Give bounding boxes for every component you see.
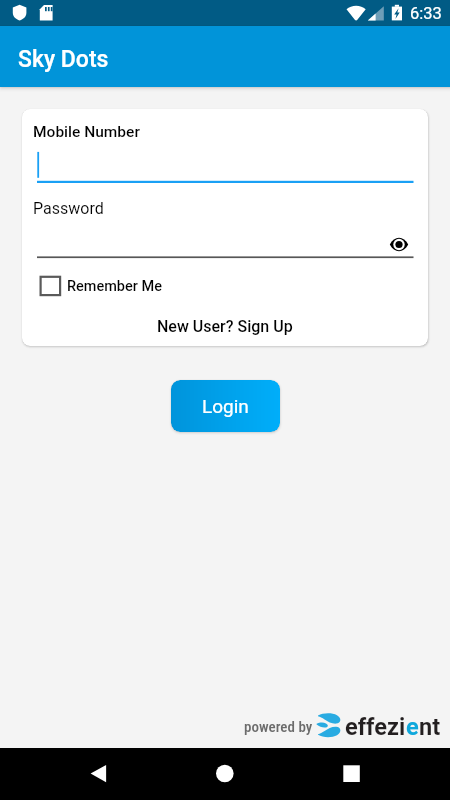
staticText: Remember Me: [67, 278, 162, 295]
button[interactable]: Login: [171, 380, 280, 432]
staticText: Login: [202, 395, 249, 417]
staticText: powered by: [244, 718, 313, 736]
button[interactable]: New User? Sign Up: [157, 317, 293, 336]
staticText: Sky Dots: [18, 46, 109, 73]
staticText: nt: [419, 713, 441, 741]
staticText: Password: [33, 199, 104, 218]
button[interactable]: Home: [202, 751, 247, 796]
button[interactable]: Back: [76, 751, 121, 796]
staticText: effezi: [345, 713, 406, 741]
staticText: 6:33: [410, 4, 442, 23]
staticText: Mobile Number: [33, 123, 140, 141]
button[interactable]: Recent apps: [329, 751, 374, 796]
button[interactable]: Show password: [387, 232, 411, 256]
button[interactable]: Remember Me: [38, 274, 162, 298]
staticText: e: [406, 713, 419, 741]
